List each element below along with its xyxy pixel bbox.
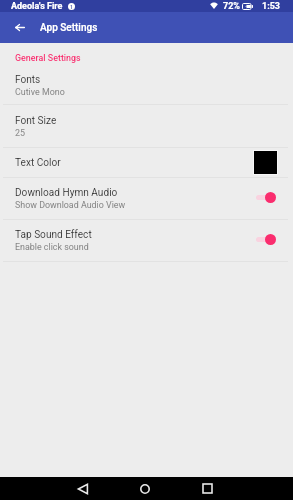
staticText: App Settings: [40, 22, 98, 34]
staticText: 1: [70, 4, 73, 10]
staticText: Font Size: [15, 115, 57, 127]
staticText: Download Hymn Audio: [15, 187, 118, 199]
staticText: Fonts: [15, 74, 41, 86]
staticText: Adeola's Fire: [11, 1, 63, 12]
button[interactable]: Back: [0, 12, 39, 43]
staticText: Text Color: [15, 157, 61, 169]
button[interactable]: Recents: [176, 477, 238, 500]
button[interactable]: Fonts: [0, 67, 293, 104]
staticText: General Settings: [15, 53, 81, 63]
button[interactable]: Font Size: [0, 105, 293, 147]
staticText: Show Download Audio View: [15, 200, 126, 210]
staticText: Enable click sound: [15, 242, 89, 252]
button[interactable]: Home: [114, 477, 176, 500]
button[interactable]: Text Color: [0, 148, 293, 177]
button[interactable]: Back: [52, 477, 114, 500]
staticText: 25: [15, 128, 25, 138]
staticText: Cutive Mono: [15, 87, 65, 97]
staticText: 1:53: [262, 1, 281, 12]
button[interactable]: Download Hymn Audio: [0, 178, 293, 219]
staticText: Tap Sound Effect: [15, 229, 92, 241]
button[interactable]: Tap Sound Effect: [0, 220, 293, 261]
staticText: 72%: [223, 1, 240, 12]
